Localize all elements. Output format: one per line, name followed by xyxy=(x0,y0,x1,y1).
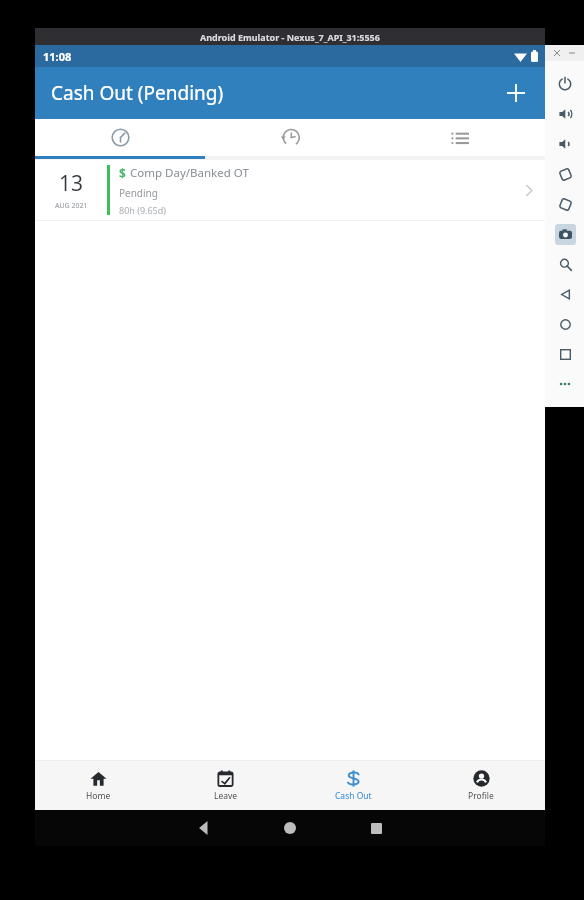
staticText: Leave xyxy=(214,790,238,802)
button[interactable]: Back xyxy=(187,811,221,845)
staticText: AUG 2021 xyxy=(55,201,88,211)
staticText: Comp Day/Banked OT xyxy=(130,165,249,181)
staticText: 13 xyxy=(59,169,84,198)
button[interactable]: 13 xyxy=(35,160,545,220)
button[interactable]: Profile xyxy=(417,761,545,810)
button[interactable]: Home xyxy=(273,811,307,845)
button[interactable]: Rotate right xyxy=(550,189,580,219)
button[interactable]: History xyxy=(205,119,375,156)
button[interactable]: Power xyxy=(550,69,580,99)
staticText: Profile xyxy=(468,790,494,802)
staticText: Android Emulator - Nexus_7_API_31:5556 xyxy=(200,31,380,43)
button[interactable]: Overview xyxy=(550,339,580,369)
button[interactable]: Take screenshot xyxy=(550,219,580,249)
button[interactable]: Volume up xyxy=(550,99,580,129)
button[interactable]: Zoom xyxy=(550,249,580,279)
staticText: Cash Out xyxy=(335,790,372,802)
button[interactable]: Cash Out xyxy=(289,761,417,810)
button[interactable]: Pending xyxy=(35,119,205,156)
button[interactable]: Add cash out request xyxy=(495,72,537,114)
button[interactable]: Leave xyxy=(162,761,289,810)
button[interactable]: Volume down xyxy=(550,129,580,159)
staticText: 11:08 xyxy=(43,49,72,64)
button[interactable]: Rotate left xyxy=(550,159,580,189)
staticText: $ xyxy=(119,165,126,181)
button[interactable]: Home xyxy=(35,761,162,810)
staticText: Pending xyxy=(119,186,158,200)
button[interactable]: All requests xyxy=(375,119,545,156)
button[interactable]: Recent apps xyxy=(359,811,393,845)
staticText: Cash Out (Pending) xyxy=(51,80,224,106)
staticText: Home xyxy=(86,790,111,802)
staticText: 80h (9.65d) xyxy=(119,204,166,216)
button[interactable]: Back xyxy=(550,279,580,309)
button[interactable]: Home xyxy=(550,309,580,339)
button[interactable]: More xyxy=(550,369,580,399)
